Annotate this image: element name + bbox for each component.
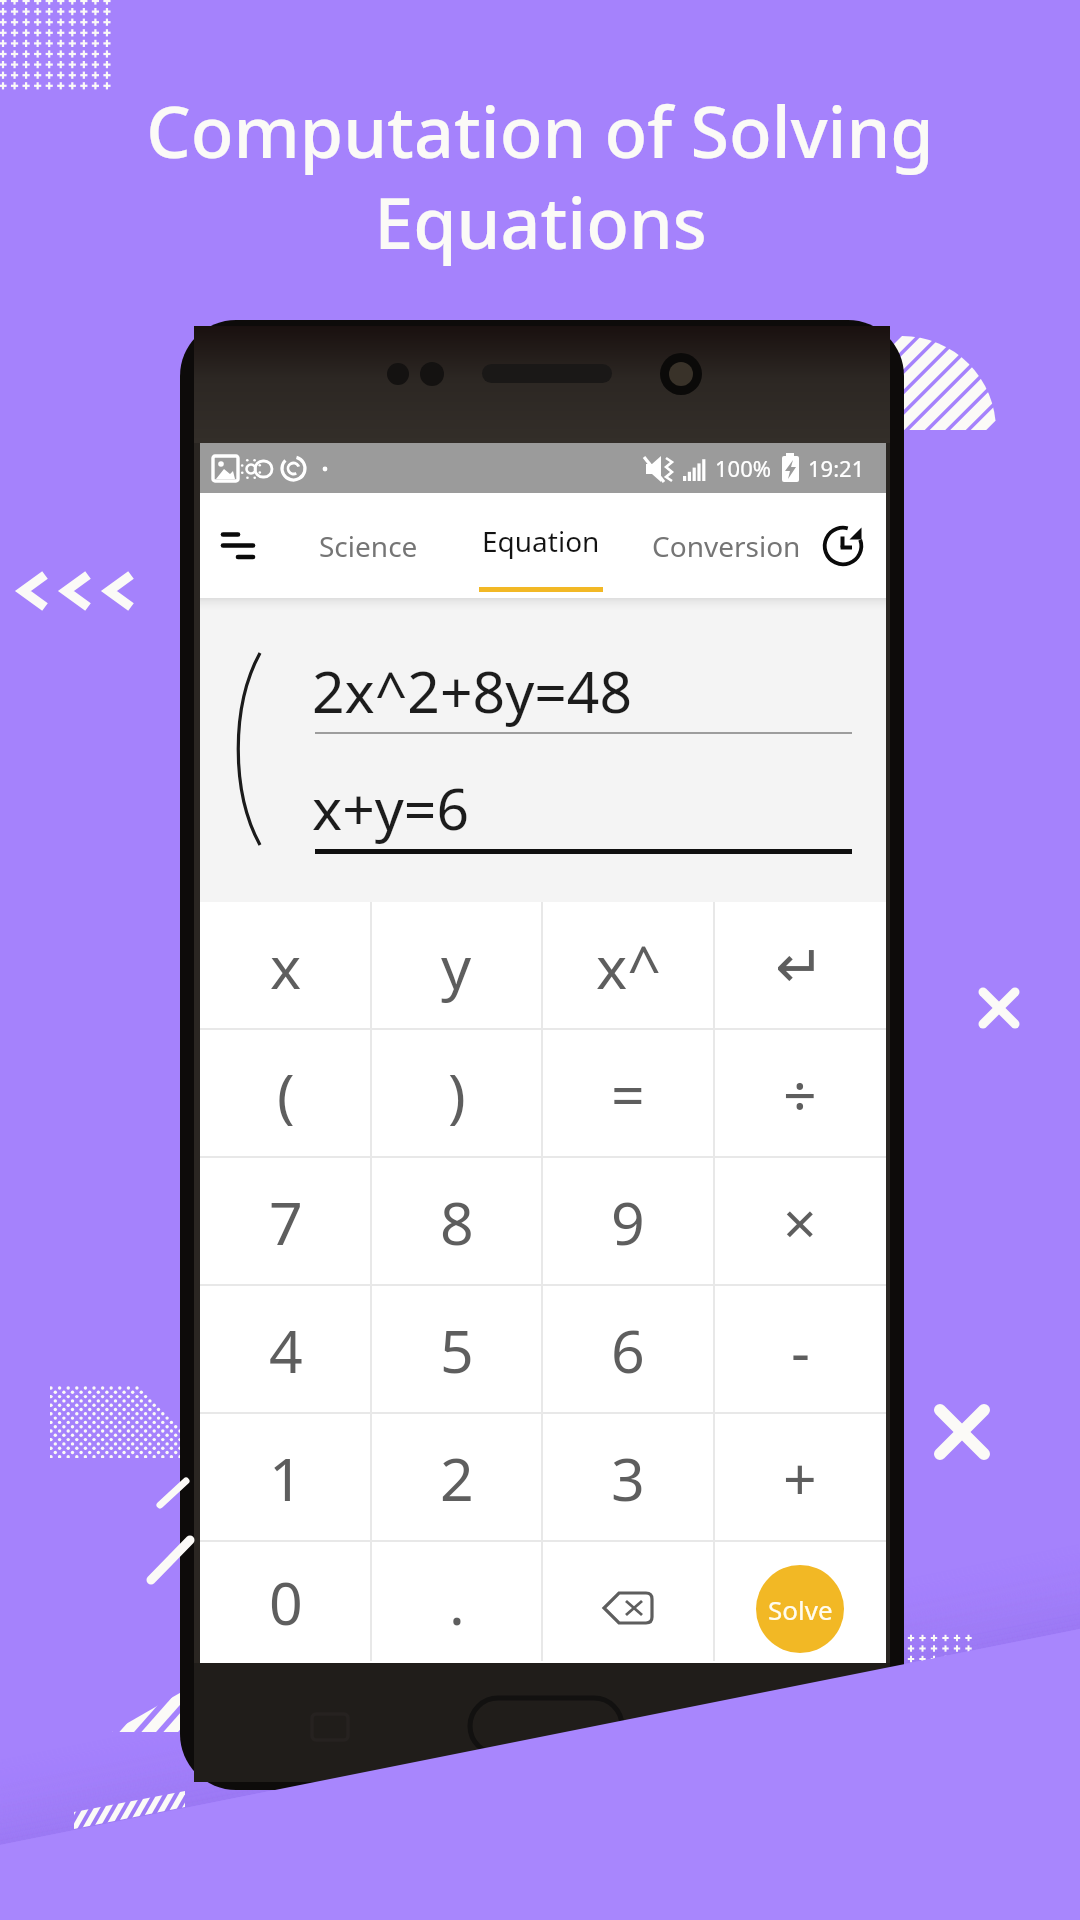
button[interactable]: 1 — [200, 1414, 371, 1542]
staticText: 3 — [611, 1438, 645, 1518]
staticText: ↵ — [775, 932, 825, 1001]
button[interactable]: 3 — [542, 1414, 714, 1542]
staticText: ÷ — [783, 1054, 817, 1134]
staticText: × — [783, 1182, 817, 1262]
button[interactable]: Conversion — [640, 493, 812, 598]
button[interactable]: ↵ — [714, 902, 886, 1030]
button[interactable]: Menu — [200, 493, 276, 598]
staticText: = — [611, 1054, 645, 1134]
button[interactable]: ÷ — [714, 1030, 886, 1158]
button[interactable]: 5 — [371, 1286, 542, 1414]
button[interactable]: 9 — [542, 1158, 714, 1286]
staticText: 1 — [269, 1438, 303, 1518]
button[interactable]: . — [371, 1542, 542, 1661]
button[interactable]: History — [810, 493, 876, 598]
staticText: 0 — [269, 1562, 303, 1642]
button[interactable]: 6 — [542, 1286, 714, 1414]
staticText: + — [783, 1438, 817, 1518]
button[interactable]: 4 — [200, 1286, 371, 1414]
staticText: x^ — [596, 926, 661, 1006]
staticText: 4 — [269, 1310, 303, 1390]
staticText: 7 — [269, 1182, 303, 1262]
button[interactable]: 8 — [371, 1158, 542, 1286]
button[interactable]: x — [200, 902, 371, 1030]
staticText: 2x^2+8y=48 — [312, 652, 633, 730]
button[interactable]: 2 — [371, 1414, 542, 1542]
staticText: ( — [277, 1054, 295, 1134]
button[interactable]: × — [714, 1158, 886, 1286]
staticText: x — [270, 926, 302, 1006]
staticText: 9 — [611, 1182, 645, 1262]
staticText: 6 — [611, 1310, 645, 1390]
staticText: Conversion — [652, 527, 801, 565]
button[interactable]: Equation — [463, 493, 619, 598]
staticText: Solve — [768, 1592, 833, 1627]
button[interactable]: x^ — [542, 902, 714, 1030]
button[interactable]: y — [371, 902, 542, 1030]
staticText: Equation — [482, 522, 600, 560]
button[interactable]: ( — [200, 1030, 371, 1158]
staticText: 5 — [440, 1310, 474, 1390]
button[interactable]: + — [714, 1414, 886, 1542]
staticText: 19:21 — [808, 453, 865, 483]
staticText: Equations — [374, 174, 707, 269]
staticText: y — [441, 926, 472, 1006]
staticText: Computation of Solving — [146, 83, 934, 178]
button[interactable]: Science — [304, 493, 432, 598]
staticText: 8 — [440, 1182, 474, 1262]
button[interactable]: Solve — [714, 1542, 886, 1661]
staticText: 2 — [440, 1438, 474, 1518]
button[interactable]: 7 — [200, 1158, 371, 1286]
button[interactable]: - — [714, 1286, 886, 1414]
staticText: . — [449, 1562, 465, 1642]
staticText: Science — [319, 527, 418, 565]
staticText: 100% — [715, 453, 772, 483]
button[interactable]: ) — [371, 1030, 542, 1158]
button[interactable]: 0 — [200, 1542, 371, 1661]
staticText: x+y=6 — [312, 769, 470, 847]
staticText: - — [791, 1310, 810, 1390]
staticText: ) — [448, 1054, 466, 1134]
button[interactable]: = — [542, 1030, 714, 1158]
button[interactable] — [542, 1542, 714, 1661]
